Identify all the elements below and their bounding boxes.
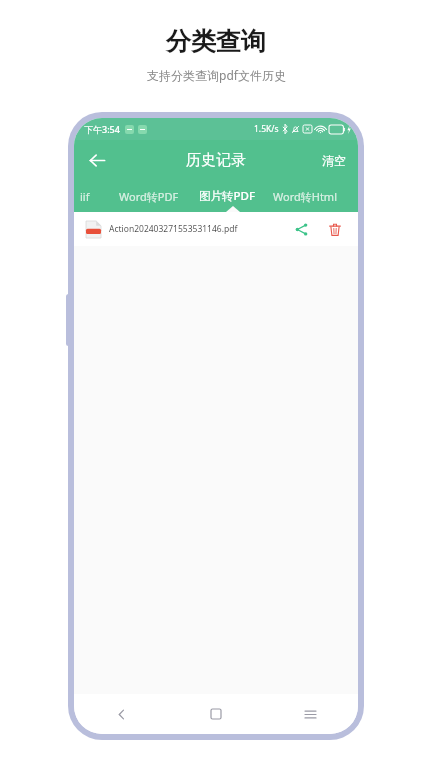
button[interactable]: Word转Html: [266, 180, 344, 212]
staticText: Action202403271553531146.pdf: [109, 223, 290, 235]
button[interactable]: Recents: [263, 694, 358, 734]
button[interactable]: Back: [80, 143, 114, 177]
staticText: 支持分类查询pdf文件历史: [147, 67, 286, 83]
staticText: 图片转PDF: [199, 188, 255, 204]
button[interactable]: Delete: [324, 218, 346, 240]
staticText: Word转PDF: [119, 189, 179, 204]
staticText: Word转Html: [273, 189, 337, 204]
button[interactable]: Action202403271553531146.pdf: [74, 212, 358, 246]
staticText: 下午3:54: [84, 123, 120, 135]
button[interactable]: iif: [74, 180, 110, 212]
button[interactable]: Word转PDF: [110, 180, 188, 212]
staticText: 分类查询: [166, 26, 266, 57]
staticText: 历史记录: [186, 151, 246, 170]
button[interactable]: Back: [74, 694, 168, 734]
button[interactable]: 清空: [310, 140, 358, 180]
staticText: 1.5K/s: [254, 123, 279, 135]
staticText: 清空: [322, 153, 346, 168]
staticText: iif: [80, 189, 90, 204]
button[interactable]: Home: [168, 694, 263, 734]
button[interactable]: 图片转PDF: [188, 180, 266, 212]
button[interactable]: Share: [290, 218, 312, 240]
